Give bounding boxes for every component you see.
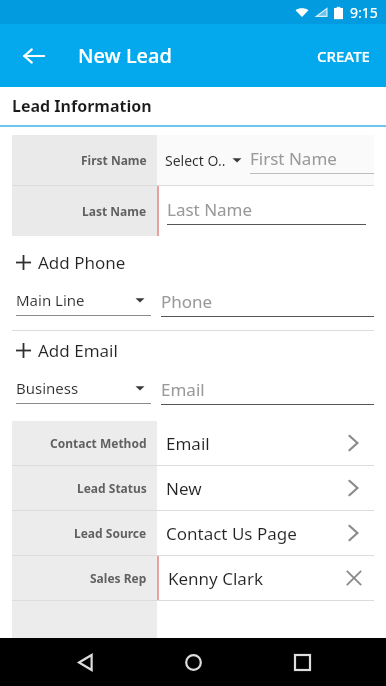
staticText: Contact Us Page	[166, 522, 297, 545]
button[interactable]: CREATE	[311, 36, 376, 76]
button[interactable]: Main Line	[16, 290, 151, 316]
button[interactable]: Lead Source	[12, 511, 374, 555]
staticText: New Lead	[78, 42, 172, 69]
button[interactable]: Phone	[161, 290, 374, 317]
staticText: First Name	[250, 147, 337, 170]
button[interactable]: Home	[169, 638, 217, 686]
staticText: Contact Method	[50, 435, 147, 451]
staticText: Last Name	[82, 203, 147, 219]
staticText: Sales Rep	[90, 570, 147, 586]
button[interactable]: Last Name	[159, 186, 374, 236]
button[interactable]: Back	[61, 638, 109, 686]
staticText: Lead Source	[74, 525, 147, 541]
button[interactable]: Recent apps	[278, 638, 326, 686]
button[interactable]: Add Phone	[0, 243, 386, 281]
staticText: Last Name	[167, 198, 253, 221]
staticText: Phone	[161, 290, 213, 313]
button[interactable]: Email	[161, 378, 374, 405]
staticText: Lead Status	[77, 480, 147, 496]
staticText: New	[166, 477, 202, 500]
staticText: First Name	[81, 152, 147, 168]
button[interactable]: Sales Rep	[12, 556, 374, 600]
button[interactable]: Add Email	[0, 331, 386, 369]
staticText: Add Phone	[38, 251, 126, 274]
button[interactable]: Back	[12, 34, 56, 78]
staticText: Business	[16, 378, 79, 398]
staticText: Lead Information	[12, 95, 152, 117]
staticText: 9:15	[350, 3, 378, 22]
staticText: Email	[161, 378, 205, 401]
staticText: Add Email	[38, 339, 118, 362]
button[interactable]: Business	[16, 378, 151, 404]
button[interactable]	[12, 601, 374, 638]
staticText: Select O..	[165, 151, 226, 170]
staticText: Kenny Clark	[168, 567, 263, 590]
button[interactable]: Lead Status	[12, 466, 374, 510]
staticText: Email	[166, 432, 210, 455]
button[interactable]: Contact Method	[12, 421, 374, 465]
staticText: Main Line	[16, 290, 85, 310]
button[interactable]: Select O..	[157, 135, 374, 185]
staticText: CREATE	[317, 46, 370, 66]
